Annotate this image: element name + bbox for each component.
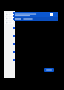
button[interactable]: Action (44, 68, 54, 72)
button[interactable]: Dismiss (14, 12, 58, 21)
button[interactable]: Marker (13, 15, 15, 17)
button[interactable] (5, 17, 13, 20)
button[interactable]: Marker (13, 18, 15, 20)
button[interactable] (4, 11, 15, 78)
button[interactable] (5, 13, 13, 16)
button[interactable] (5, 21, 13, 24)
button[interactable]: Marker (13, 12, 15, 14)
